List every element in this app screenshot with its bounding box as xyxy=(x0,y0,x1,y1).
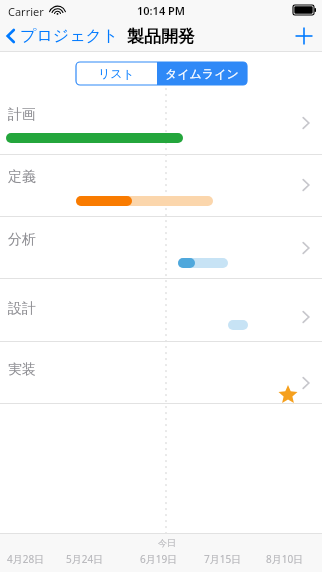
button[interactable] xyxy=(0,168,322,216)
staticText: 今日 xyxy=(158,537,176,548)
staticText: Carrier xyxy=(8,4,44,19)
staticText: リスト xyxy=(98,66,135,81)
button[interactable]: リスト xyxy=(76,62,157,85)
staticText: 7月15日 xyxy=(204,552,242,566)
button[interactable]: タイムライン xyxy=(157,62,247,85)
button[interactable] xyxy=(0,293,322,341)
staticText: 10:14 PM xyxy=(137,3,186,18)
button[interactable]: プロジェクト xyxy=(4,20,119,52)
button[interactable] xyxy=(0,106,322,154)
staticText: 設計 xyxy=(8,300,36,318)
button[interactable] xyxy=(0,230,322,278)
staticText: 5月24日 xyxy=(66,552,104,566)
staticText: 製品開発 xyxy=(127,26,195,47)
staticText: 実装 xyxy=(8,361,36,379)
staticText: 定義 xyxy=(8,168,36,186)
staticText: 6月19日 xyxy=(140,552,178,566)
button[interactable]: Add xyxy=(288,20,320,52)
staticText: 8月10日 xyxy=(266,552,304,566)
staticText: タイムライン xyxy=(165,66,239,81)
staticText: プロジェクト xyxy=(20,26,119,46)
staticText: 計画 xyxy=(8,106,36,124)
staticText: 分析 xyxy=(8,231,36,249)
button[interactable] xyxy=(0,355,322,403)
staticText: 4月28日 xyxy=(7,552,45,566)
